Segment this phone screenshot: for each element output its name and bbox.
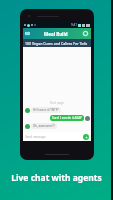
button[interactable]: Ok, awesome!!! — [25, 123, 91, 129]
staticText: Ok, awesome!!! — [33, 124, 55, 128]
staticText: 100 Vegan Cures and Calires For Teds — [25, 41, 88, 46]
staticText: Meal Build — [44, 31, 68, 37]
staticText: Live chat with agents — [0, 172, 113, 184]
staticText: 9:41 — [71, 23, 77, 27]
button[interactable]: Send — [83, 134, 89, 140]
button[interactable]: Call — [82, 30, 89, 37]
staticText: First page — [23, 101, 91, 105]
button[interactable]: Hi! how is it? WTF? — [25, 107, 91, 113]
button[interactable]: Menu — [24, 30, 31, 37]
button[interactable]: Send message — [23, 132, 91, 141]
staticText: Send message — [25, 135, 46, 139]
staticText: Hi! how is it? WTF? — [33, 108, 59, 112]
button[interactable]: Sure! I can do it ASAP — [23, 115, 90, 121]
staticText: Sure! I can do it ASAP — [52, 116, 82, 120]
